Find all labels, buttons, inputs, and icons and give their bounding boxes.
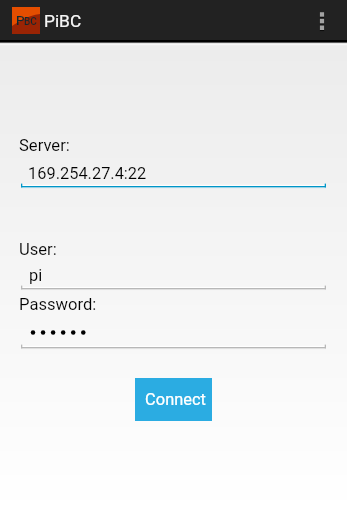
button[interactable]: Password	[21, 320, 326, 350]
staticText: Connect	[145, 390, 206, 409]
staticText: Server:	[19, 136, 70, 155]
button[interactable]: More options	[296, 0, 347, 41]
button[interactable]: Server address	[21, 158, 326, 190]
button[interactable]: User name	[21, 260, 326, 292]
staticText: 169.254.27.4:22	[28, 164, 147, 183]
staticText: pi	[29, 266, 43, 285]
staticText: P	[16, 12, 25, 28]
staticText: User:	[19, 240, 57, 259]
staticText: PiBC	[44, 11, 82, 31]
staticText: Password:	[19, 295, 97, 314]
button[interactable]: Connect	[135, 378, 212, 421]
staticText: BC	[24, 16, 37, 28]
